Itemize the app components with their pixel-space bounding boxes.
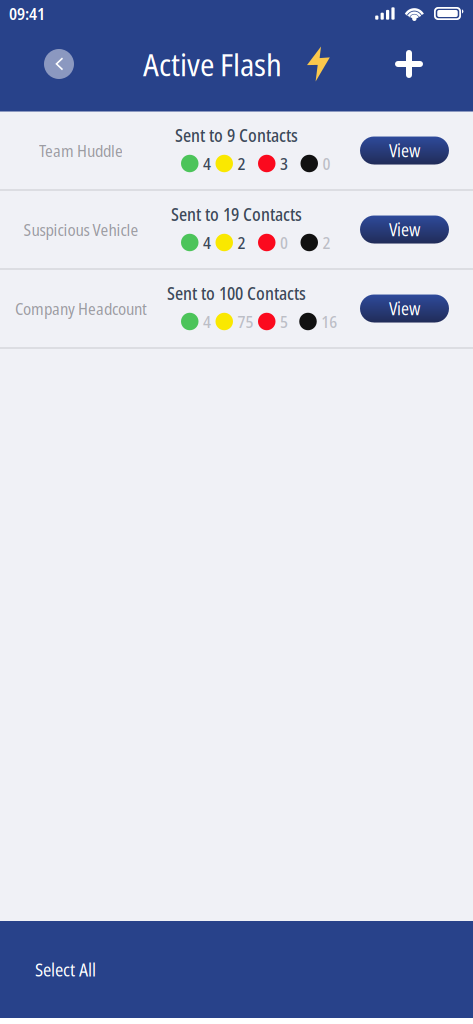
- staticText: View: [389, 297, 420, 320]
- staticText: 4: [203, 310, 211, 333]
- staticText: Suspicious Vehicle: [23, 218, 138, 241]
- staticText: 4: [203, 231, 211, 254]
- staticText: 16: [321, 310, 337, 333]
- staticText: Team Huddle: [39, 139, 123, 162]
- button[interactable]: View: [360, 215, 449, 243]
- staticText: View: [389, 139, 420, 162]
- staticText: Sent to 100 Contacts: [167, 281, 306, 305]
- staticText: 0: [322, 152, 330, 175]
- staticText: View: [389, 218, 420, 241]
- button[interactable]: Select All: [0, 921, 473, 1018]
- staticText: Company Headcount: [15, 297, 147, 320]
- button[interactable]: New flash: [387, 42, 431, 86]
- button[interactable]: View: [360, 136, 449, 164]
- staticText: Sent to 9 Contacts: [175, 123, 298, 147]
- button[interactable]: View: [360, 294, 449, 322]
- staticText: 3: [280, 152, 288, 175]
- staticText: 0: [280, 231, 288, 254]
- staticText: 2: [237, 152, 245, 175]
- staticText: 09:41: [9, 2, 45, 25]
- staticText: Select All: [35, 957, 96, 982]
- staticText: 2: [237, 231, 245, 254]
- staticText: 4: [203, 152, 211, 175]
- button[interactable]: Back: [37, 42, 81, 86]
- staticText: 75: [237, 310, 253, 333]
- staticText: Active Flash: [143, 43, 282, 85]
- staticText: 2: [322, 231, 330, 254]
- staticText: 5: [280, 310, 288, 333]
- staticText: Sent to 19 Contacts: [171, 202, 302, 226]
